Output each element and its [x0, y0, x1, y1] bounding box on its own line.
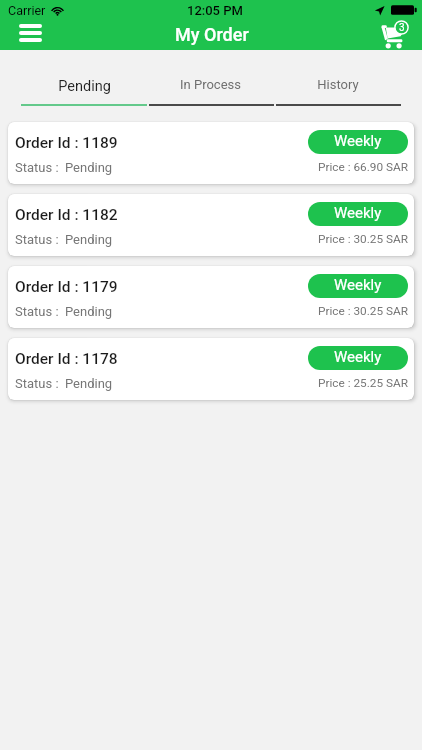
button[interactable]: Pending [21, 72, 147, 106]
staticText: Carrier [8, 3, 46, 18]
button[interactable]: Order Id : 1179 [8, 266, 414, 328]
button[interactable]: Order Id : 1189 [8, 122, 414, 184]
staticText: Weekly [334, 276, 382, 294]
staticText: Status : Pending [15, 304, 113, 319]
button[interactable]: History [274, 72, 401, 106]
staticText: Price : 30.25 SAR [318, 232, 408, 246]
button[interactable]: Order Id : 1178 [8, 338, 414, 400]
button[interactable]: Weekly [308, 274, 408, 298]
staticText: Status : Pending [15, 376, 113, 391]
button[interactable]: Weekly [308, 130, 408, 154]
staticText: My Order [175, 24, 249, 45]
button[interactable]: Weekly [308, 346, 408, 370]
staticText: Price : 25.25 SAR [318, 376, 408, 390]
staticText: In Process [180, 77, 241, 92]
staticText: Weekly [334, 348, 382, 366]
staticText: Order Id : 1179 [15, 278, 118, 296]
staticText: Status : Pending [15, 160, 113, 175]
staticText: Weekly [334, 132, 382, 150]
staticText: 12:05 PM [187, 3, 243, 18]
staticText: Status : Pending [15, 232, 113, 247]
staticText: 3 [399, 22, 405, 34]
staticText: History [317, 77, 359, 92]
staticText: Pending [58, 78, 111, 95]
staticText: Order Id : 1178 [15, 350, 118, 368]
staticText: Weekly [334, 204, 382, 222]
button[interactable]: Cart [378, 20, 412, 50]
button[interactable]: Order Id : 1182 [8, 194, 414, 256]
button[interactable]: Weekly [308, 202, 408, 226]
staticText: Order Id : 1189 [15, 134, 118, 152]
button[interactable]: Menu [12, 18, 48, 48]
button[interactable]: In Process [147, 72, 274, 106]
staticText: Price : 66.90 SAR [318, 160, 408, 174]
staticText: Order Id : 1182 [15, 206, 118, 224]
staticText: Price : 30.25 SAR [318, 304, 408, 318]
